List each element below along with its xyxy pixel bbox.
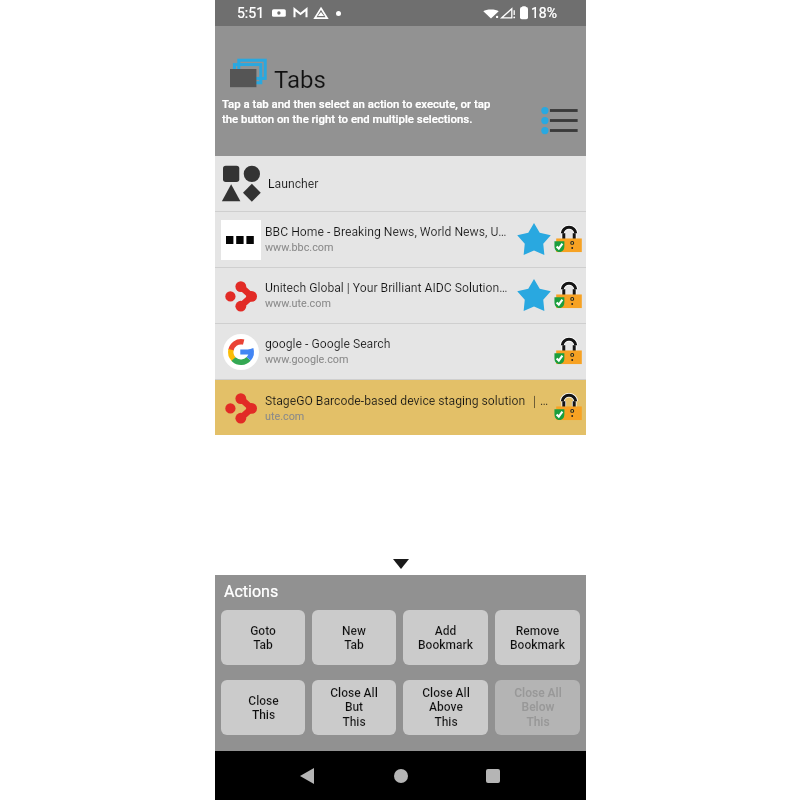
staticText: New Tab bbox=[342, 624, 366, 652]
button[interactable]: StageGO Barcode-based device staging sol… bbox=[215, 380, 586, 435]
button[interactable]: Close This bbox=[221, 680, 305, 735]
button[interactable]: End multiple selections bbox=[538, 98, 582, 142]
staticText: StageGO Barcode-based device staging sol… bbox=[265, 393, 549, 408]
staticText: Tap a tab and then select an action to e… bbox=[222, 97, 491, 126]
staticText: www.bbc.com bbox=[265, 241, 334, 254]
staticText: Add Bookmark bbox=[418, 624, 473, 652]
button[interactable]: Close All Below This bbox=[495, 680, 580, 735]
button[interactable]: Launcher bbox=[215, 156, 586, 211]
staticText: Unitech Global | Your Brilliant AIDC Sol… bbox=[265, 281, 508, 295]
button[interactable]: BBC Home - Breaking News, World News, U… bbox=[215, 212, 586, 267]
staticText: google - Google Search bbox=[265, 337, 391, 351]
button[interactable]: Unitech Global | Your Brilliant AIDC Sol… bbox=[215, 268, 586, 323]
staticText: Tabs bbox=[274, 66, 326, 94]
button[interactable]: Recents bbox=[470, 753, 516, 799]
staticText: Close This bbox=[248, 694, 279, 722]
staticText: Goto Tab bbox=[250, 624, 276, 652]
staticText: Actions bbox=[224, 582, 279, 601]
button[interactable]: Goto Tab bbox=[221, 610, 305, 665]
button[interactable]: Home bbox=[378, 753, 424, 799]
staticText: 5:51 bbox=[237, 5, 264, 21]
staticText: www.google.com bbox=[265, 353, 349, 366]
staticText: Launcher bbox=[268, 177, 319, 191]
button[interactable]: Scroll down bbox=[393, 559, 409, 569]
button[interactable]: Add Bookmark bbox=[403, 610, 488, 665]
button[interactable]: Close All But This bbox=[312, 680, 396, 735]
staticText: Close All Below This bbox=[514, 686, 562, 729]
button[interactable]: Back bbox=[284, 753, 330, 799]
staticText: 18% bbox=[531, 5, 557, 21]
button[interactable]: Remove Bookmark bbox=[495, 610, 580, 665]
staticText: www.ute.com bbox=[265, 297, 331, 310]
button[interactable]: google - Google Search bbox=[215, 324, 586, 379]
staticText: Close All But This bbox=[330, 686, 378, 729]
staticText: Remove Bookmark bbox=[510, 624, 565, 652]
staticText: BBC Home - Breaking News, World News, U… bbox=[265, 225, 507, 239]
button[interactable]: New Tab bbox=[312, 610, 396, 665]
button[interactable]: Close All Above This bbox=[403, 680, 488, 735]
staticText: Close All Above This bbox=[422, 686, 470, 729]
staticText: ute.com bbox=[265, 410, 305, 423]
